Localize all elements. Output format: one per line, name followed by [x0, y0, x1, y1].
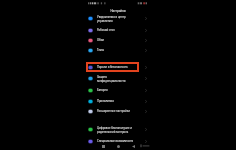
button[interactable]: Батарея — [85, 85, 151, 95]
staticText: Цифровое благополучие и родительский кон… — [97, 126, 133, 133]
staticText: Расширенные настройки — [97, 109, 143, 113]
staticText: Защита конфиденциальности — [97, 75, 133, 82]
button[interactable]: Приложения — [85, 96, 151, 106]
button[interactable]: Защита конфиденциальности — [85, 72, 151, 85]
button[interactable]: Home — [114, 142, 122, 150]
staticText: Пароли и безопасность — [97, 65, 143, 69]
staticText: Рабочий стол — [97, 28, 143, 32]
staticText: Настройки — [85, 9, 151, 13]
button[interactable]: Уведомления и центр управления — [85, 12, 151, 25]
button[interactable]: Цифровое благополучие и родительский кон… — [85, 123, 151, 136]
button[interactable]: Пароли и безопасность — [85, 62, 151, 72]
button[interactable]: Обои — [85, 35, 151, 45]
staticText: Приложения — [97, 99, 143, 103]
button[interactable]: Recents — [99, 142, 107, 150]
button[interactable]: Темы — [85, 45, 151, 55]
button[interactable]: Расширенные настройки — [85, 106, 151, 116]
button[interactable]: Специальные возможности — [85, 136, 151, 146]
button[interactable]: Back — [129, 142, 137, 150]
button[interactable]: Рабочий стол — [85, 25, 151, 35]
staticText: Уведомления и центр управления — [97, 15, 133, 22]
staticText: Обои — [97, 38, 143, 42]
staticText: Батарея — [97, 88, 143, 92]
staticText: Темы — [97, 48, 143, 52]
staticText: Специальные возможности — [97, 139, 143, 143]
